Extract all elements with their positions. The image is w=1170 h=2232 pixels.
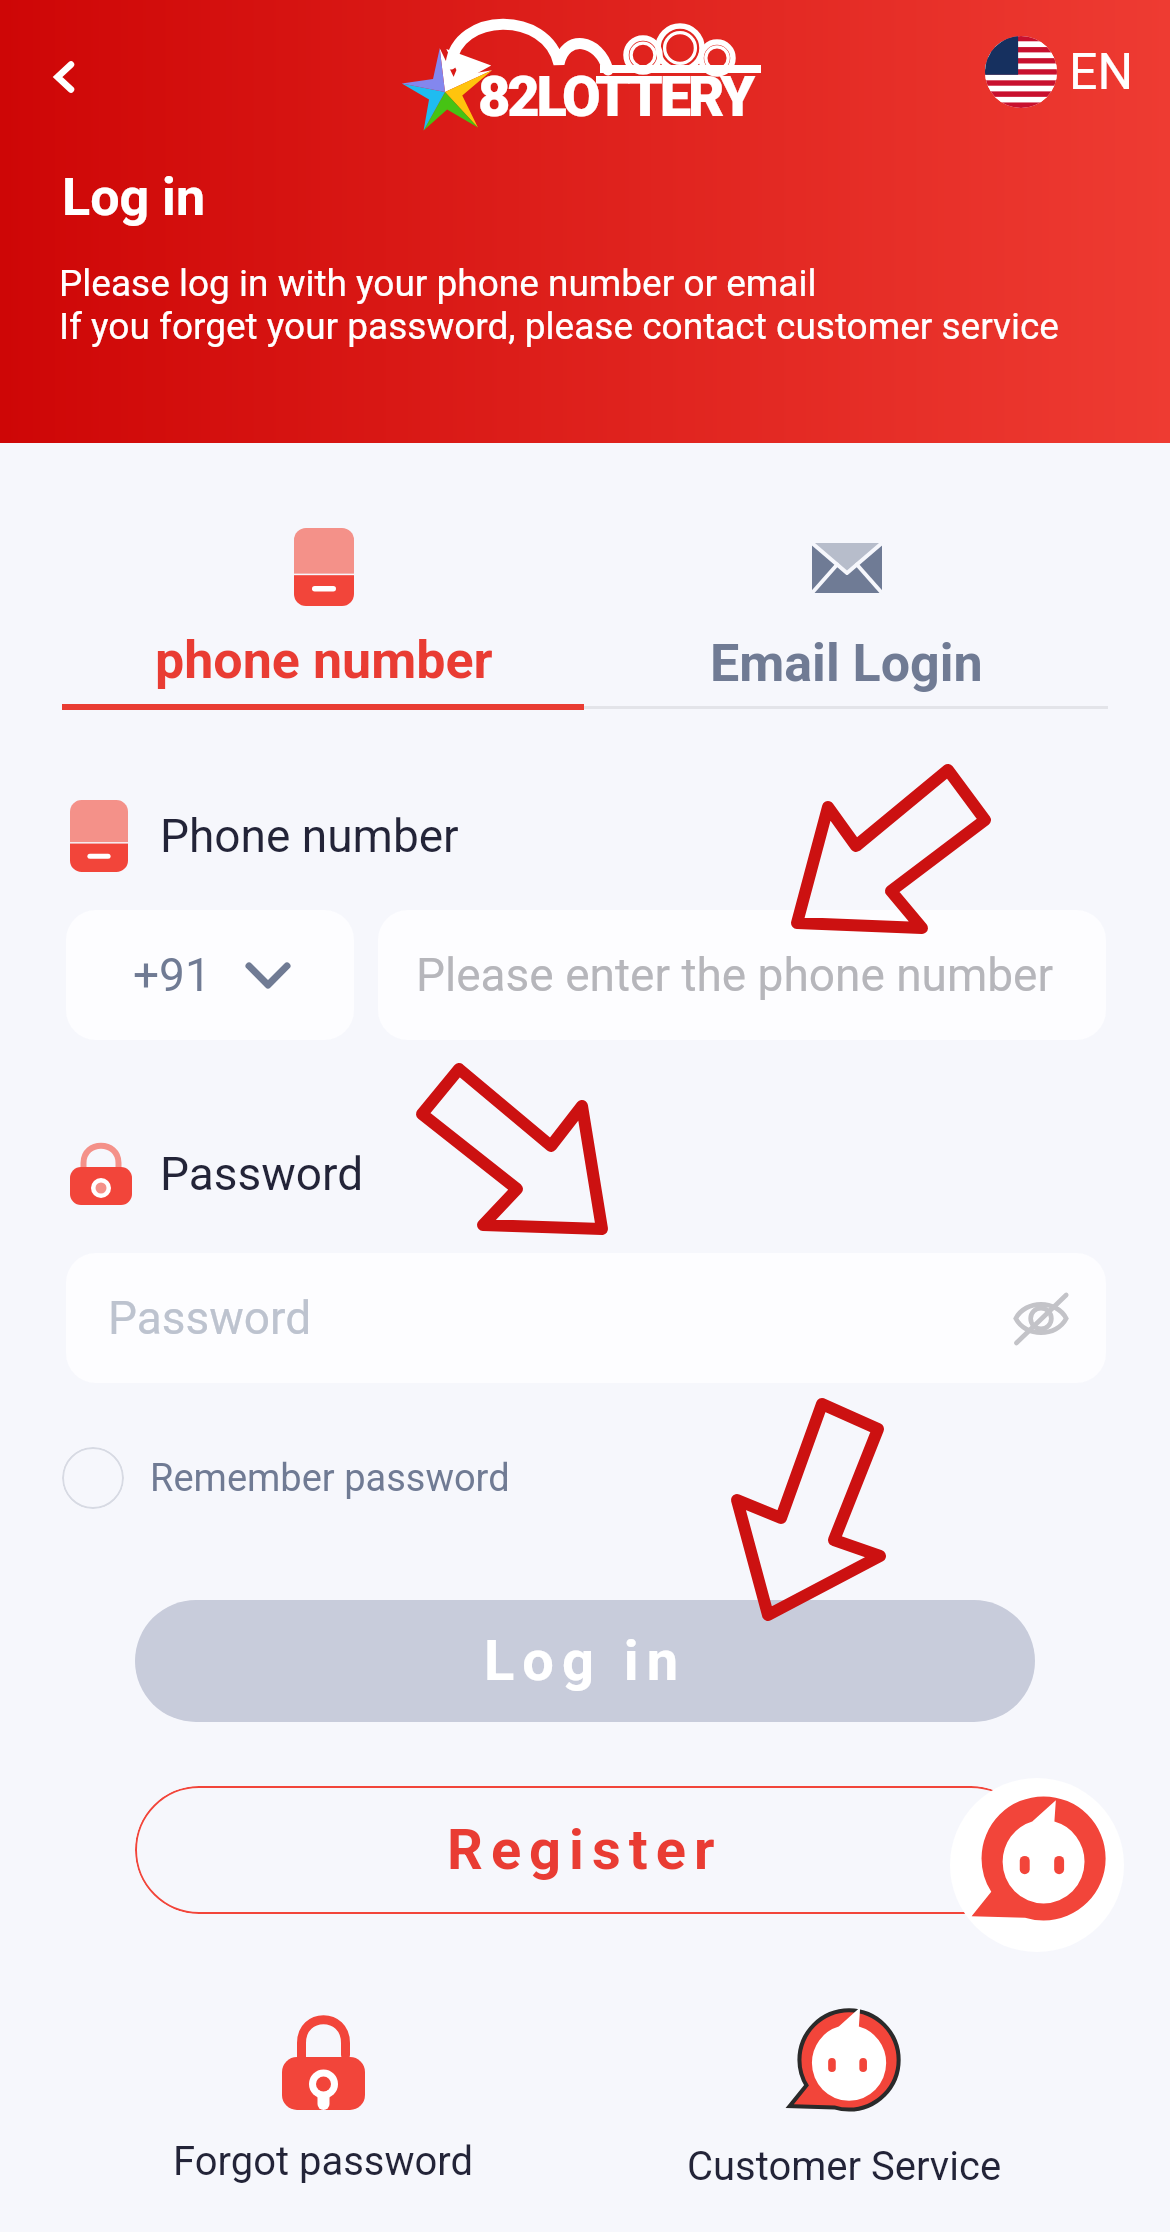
staticText: EN	[1069, 43, 1134, 102]
staticText: Log in	[484, 1628, 687, 1694]
staticText: Register	[447, 1817, 723, 1883]
staticText: Password	[108, 1291, 312, 1345]
button[interactable]: Email Login	[585, 528, 1108, 694]
button[interactable]: Back	[20, 32, 110, 122]
staticText: Please enter the phone number	[416, 948, 1054, 1002]
staticText: Forgot password	[173, 2138, 474, 2185]
button[interactable]: EN	[979, 30, 1140, 114]
staticText: 82LOTTERY	[478, 64, 752, 130]
staticText: Log in	[62, 167, 206, 228]
button[interactable]: Customer service chat	[950, 1778, 1124, 1952]
button[interactable]: Please enter the phone number	[378, 910, 1106, 1040]
staticText: Email Login	[710, 633, 983, 694]
staticText: +91	[133, 948, 211, 1002]
button[interactable]: Forgot password	[123, 2013, 523, 2185]
staticText: If you forget your password, please cont…	[59, 305, 1059, 348]
staticText: Please log in with your phone number or …	[59, 262, 817, 305]
staticText: Customer Service	[687, 2143, 1002, 2190]
button[interactable]: Log in	[135, 1600, 1035, 1722]
staticText: phone number	[155, 630, 493, 691]
button[interactable]: +91	[66, 910, 354, 1040]
staticText: Phone number	[160, 809, 459, 863]
button[interactable]: Remember password	[62, 1447, 526, 1509]
staticText: Remember password	[150, 1456, 510, 1501]
button[interactable]: Password	[66, 1253, 1106, 1383]
button[interactable]: Customer Service	[644, 2009, 1044, 2190]
button[interactable]: Show password	[1004, 1281, 1078, 1355]
button[interactable]: phone number	[62, 528, 585, 691]
staticText: Password	[160, 1147, 364, 1201]
button[interactable]: Register	[135, 1786, 1035, 1914]
